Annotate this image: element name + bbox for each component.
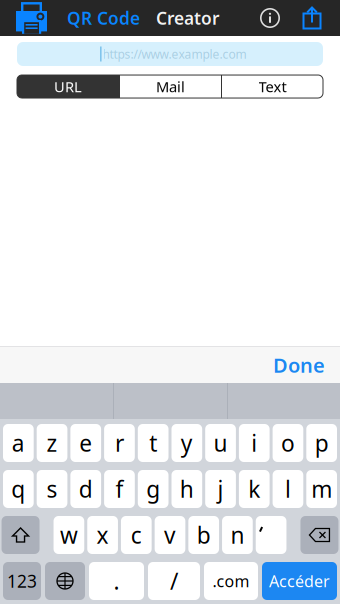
button[interactable]: Print xyxy=(0,0,67,36)
staticText: .com xyxy=(212,570,249,592)
button[interactable]: a xyxy=(3,424,34,462)
button[interactable]: e xyxy=(70,424,101,462)
staticText: k xyxy=(248,474,260,504)
button[interactable]: k xyxy=(239,470,270,508)
staticText: Done xyxy=(273,352,325,378)
button[interactable]: Apostrophe xyxy=(256,516,286,554)
staticText: j xyxy=(218,474,224,504)
staticText: u xyxy=(214,428,228,458)
button[interactable]: / xyxy=(148,562,200,600)
staticText: v xyxy=(164,520,176,550)
staticText: QR Code xyxy=(67,6,140,29)
button[interactable]: v xyxy=(155,516,185,554)
staticText: h xyxy=(180,474,194,504)
staticText: t xyxy=(149,428,157,458)
button[interactable]: b xyxy=(188,516,219,554)
button[interactable]: o xyxy=(273,424,303,462)
button[interactable]: z xyxy=(37,424,67,462)
button[interactable]: i xyxy=(239,424,270,462)
button[interactable]: c xyxy=(121,516,152,554)
staticText: d xyxy=(79,474,93,504)
button[interactable]: h xyxy=(171,470,202,508)
button[interactable]: l xyxy=(273,470,303,508)
button[interactable]: w xyxy=(54,516,84,554)
staticText: r xyxy=(115,428,124,458)
button[interactable]: Mail xyxy=(120,75,221,98)
button[interactable]: t xyxy=(138,424,168,462)
button[interactable]: d xyxy=(70,470,101,508)
button[interactable]: URL xyxy=(17,75,119,98)
staticText: l xyxy=(285,474,291,504)
button[interactable]: y xyxy=(171,424,202,462)
staticText: y xyxy=(181,428,193,458)
staticText: . xyxy=(113,566,119,596)
button[interactable]: s xyxy=(37,470,67,508)
button[interactable]: p xyxy=(306,424,337,462)
button[interactable]: Shift xyxy=(2,516,40,554)
staticText: w xyxy=(60,520,78,550)
staticText: o xyxy=(281,428,295,458)
button[interactable]: q xyxy=(3,470,34,508)
button[interactable]: Next keyboard xyxy=(45,562,85,600)
button[interactable]: Text xyxy=(222,75,323,98)
button[interactable]: 123 xyxy=(3,562,41,600)
button[interactable]: x xyxy=(87,516,118,554)
staticText: g xyxy=(146,474,160,504)
staticText: Accéder xyxy=(269,570,330,592)
staticText: Text xyxy=(258,77,286,96)
button[interactable]: m xyxy=(306,470,337,508)
staticText: https://www.example.com xyxy=(103,46,247,62)
staticText: Creator xyxy=(156,6,220,29)
button[interactable]: Done xyxy=(273,344,340,386)
staticText: x xyxy=(97,520,109,550)
button[interactable]: j xyxy=(205,470,236,508)
staticText: z xyxy=(47,428,58,458)
button[interactable]: . xyxy=(89,562,144,600)
staticText: URL xyxy=(54,77,82,96)
button[interactable]: Delete xyxy=(300,516,338,554)
button[interactable]: u xyxy=(205,424,236,462)
button[interactable]: Accéder xyxy=(262,562,337,600)
staticText: s xyxy=(47,474,58,504)
staticText: 123 xyxy=(7,569,37,592)
button[interactable]: f xyxy=(104,470,135,508)
staticText: f xyxy=(115,474,123,504)
button[interactable]: Info xyxy=(255,0,285,36)
staticText: q xyxy=(11,474,25,504)
staticText: n xyxy=(230,520,244,550)
button[interactable]: r xyxy=(104,424,135,462)
staticText: a xyxy=(12,428,25,458)
button[interactable]: .com xyxy=(204,562,258,600)
staticText: i xyxy=(251,428,257,458)
staticText: b xyxy=(197,520,211,550)
staticText: m xyxy=(311,474,332,504)
button[interactable]: n xyxy=(222,516,253,554)
staticText: Mail xyxy=(156,77,185,96)
button[interactable]: Share xyxy=(285,0,340,36)
staticText: p xyxy=(315,428,329,458)
staticText: c xyxy=(131,520,142,550)
button[interactable]: g xyxy=(138,470,168,508)
staticText: / xyxy=(170,566,178,596)
staticText: e xyxy=(79,428,92,458)
